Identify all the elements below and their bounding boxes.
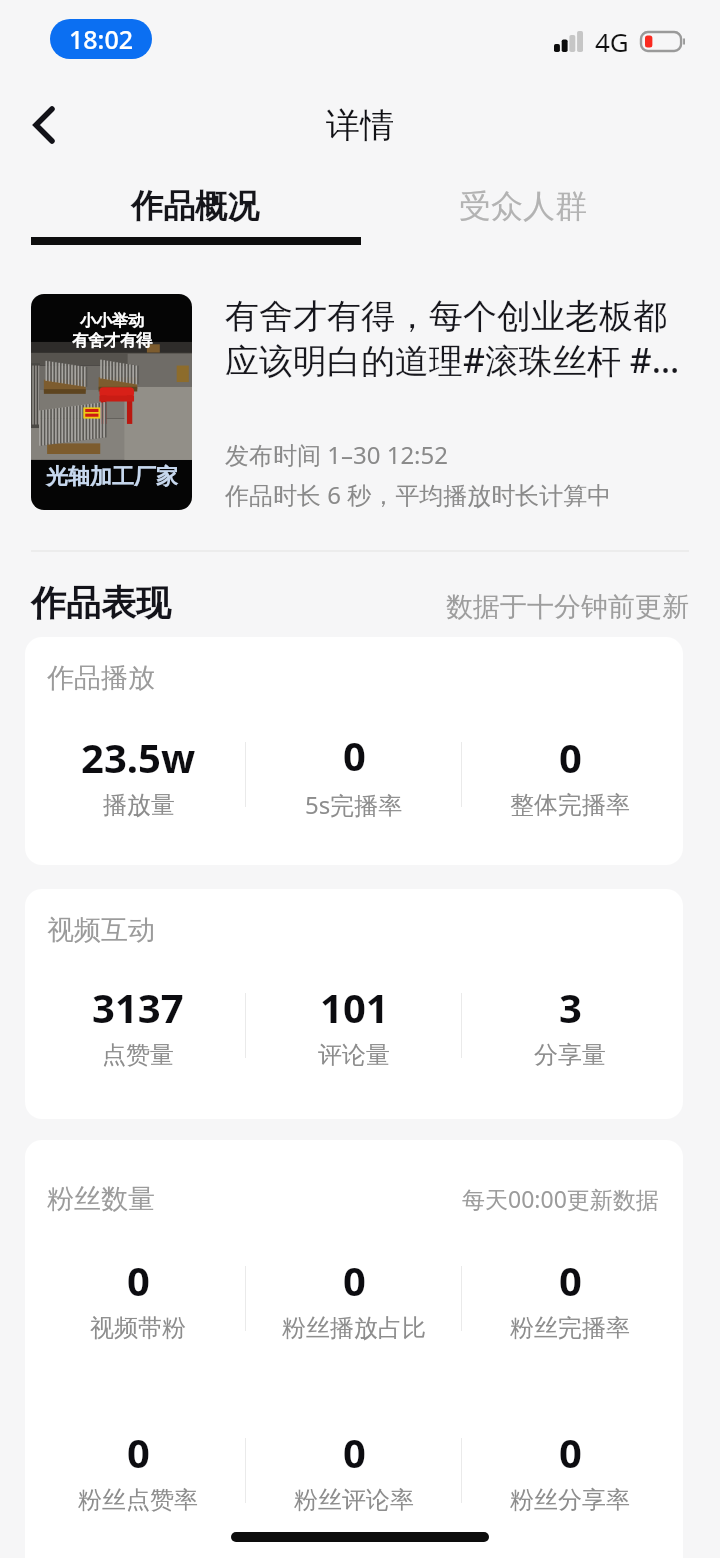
staticText: 0 bbox=[343, 728, 366, 782]
staticText: 每天00:00更新数据 bbox=[462, 1183, 659, 1214]
staticText: 作品概况 bbox=[131, 186, 259, 226]
staticText: 视频带粉 bbox=[90, 1313, 186, 1343]
staticText: 粉丝播放占比 bbox=[282, 1313, 426, 1343]
staticText: 粉丝点赞率 bbox=[78, 1485, 198, 1515]
staticText: 0 bbox=[559, 1253, 582, 1307]
staticText: 评论量 bbox=[318, 1040, 390, 1070]
staticText: 作品时长 6 秒，平均播放时长计算中 bbox=[225, 478, 612, 511]
staticText: 3137 bbox=[92, 980, 184, 1034]
staticText: 分享量 bbox=[534, 1040, 606, 1070]
staticText: 0 bbox=[559, 730, 582, 784]
staticText: 粉丝完播率 bbox=[510, 1313, 630, 1343]
staticText: 0 bbox=[343, 1425, 366, 1479]
staticText: 播放量 bbox=[103, 790, 175, 820]
staticText: 粉丝分享率 bbox=[510, 1485, 630, 1515]
staticText: 光轴加工厂家 bbox=[46, 463, 178, 491]
staticText: 18:02 bbox=[69, 22, 134, 56]
staticText: 0 bbox=[559, 1425, 582, 1479]
staticText: 4G bbox=[595, 24, 629, 59]
staticText: 整体完播率 bbox=[510, 790, 630, 820]
staticText: 粉丝评论率 bbox=[294, 1485, 414, 1515]
button[interactable]: 作品播放 bbox=[25, 637, 683, 865]
staticText: 101 bbox=[320, 980, 389, 1034]
staticText: 作品表现 bbox=[31, 581, 171, 625]
staticText: 视频互动 bbox=[47, 913, 155, 947]
staticText: 有舍才有得 bbox=[72, 331, 152, 351]
staticText: 小小举动 bbox=[80, 311, 144, 331]
button[interactable]: Video thumbnail bbox=[31, 294, 192, 510]
staticText: 数据于十分钟前更新 bbox=[446, 590, 689, 624]
staticText: 5s完播率 bbox=[305, 788, 403, 821]
staticText: 发布时间 1–30 12:52 bbox=[225, 438, 449, 471]
button[interactable]: 粉丝数量 bbox=[25, 1140, 683, 1558]
staticText: 23.5w bbox=[81, 730, 196, 784]
staticText: 点赞量 bbox=[102, 1040, 174, 1070]
staticText: 3 bbox=[559, 980, 582, 1034]
staticText: 受众人群 bbox=[459, 186, 587, 226]
staticText: 有舍才有得，每个创业老板都应该明白的道理#滚珠丝杆 #… bbox=[225, 295, 688, 383]
staticText: 0 bbox=[127, 1253, 150, 1307]
staticText: 0 bbox=[343, 1253, 366, 1307]
button[interactable]: 受众人群 bbox=[359, 170, 687, 242]
button[interactable]: 视频互动 bbox=[25, 889, 683, 1119]
button[interactable]: 作品概况 bbox=[31, 170, 359, 242]
button[interactable]: Back bbox=[14, 95, 74, 155]
staticText: 粉丝数量 bbox=[47, 1182, 155, 1216]
staticText: 0 bbox=[127, 1425, 150, 1479]
staticText: 作品播放 bbox=[47, 661, 155, 695]
staticText: 详情 bbox=[326, 104, 394, 147]
